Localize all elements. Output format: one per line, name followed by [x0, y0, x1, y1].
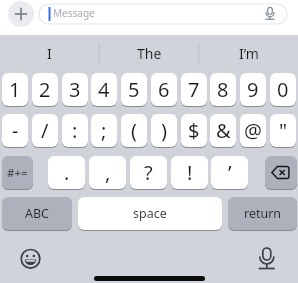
staticText: . — [64, 159, 70, 186]
button[interactable]: ( — [121, 114, 147, 148]
staticText: 4 — [98, 76, 110, 103]
staticText: ’ — [228, 159, 232, 186]
staticText: 1 — [9, 76, 21, 103]
button[interactable]: 2 — [32, 73, 58, 107]
button[interactable]: 1 — [2, 73, 28, 107]
button[interactable]: ! — [171, 156, 208, 190]
button[interactable]: - — [2, 114, 28, 148]
staticText: 5 — [128, 76, 140, 103]
staticText: space — [133, 205, 167, 222]
button[interactable]: , — [89, 156, 126, 190]
staticText: 6 — [158, 76, 170, 103]
button[interactable]: ; — [91, 114, 117, 148]
staticText: return — [244, 205, 282, 222]
button[interactable]: 0 — [270, 73, 296, 107]
staticText: / — [41, 117, 49, 144]
staticText: 0 — [277, 76, 289, 103]
staticText: : — [72, 117, 78, 144]
staticText: #+= — [7, 165, 28, 181]
staticText: 7 — [188, 76, 200, 103]
staticText: I’m — [239, 44, 259, 63]
button[interactable]: ’ — [211, 156, 248, 190]
button[interactable]: $ — [181, 114, 207, 148]
button[interactable]: 6 — [151, 73, 177, 107]
staticText: , — [105, 159, 111, 186]
button[interactable]: ? — [130, 156, 167, 190]
staticText: " — [279, 117, 288, 144]
staticText: ? — [144, 159, 153, 186]
button[interactable]: ) — [151, 114, 177, 148]
staticText: I — [47, 44, 52, 63]
button[interactable]: 3 — [62, 73, 88, 107]
staticText: ) — [161, 117, 167, 144]
button[interactable]: ABC — [2, 197, 72, 231]
button[interactable] — [252, 244, 282, 274]
staticText: $ — [188, 117, 200, 144]
button[interactable] — [265, 156, 297, 190]
button[interactable]: & — [210, 114, 236, 148]
button[interactable]: / — [32, 114, 58, 148]
button[interactable] — [16, 244, 46, 274]
button[interactable]: 7 — [181, 73, 207, 107]
staticText: The — [137, 44, 162, 63]
button[interactable]: 4 — [91, 73, 117, 107]
button[interactable]: 9 — [240, 73, 266, 107]
staticText: ( — [131, 117, 137, 144]
staticText: 3 — [69, 76, 81, 103]
staticText: ; — [101, 117, 107, 144]
button[interactable]: I — [0, 40, 99, 66]
button[interactable]: Message — [39, 4, 287, 24]
staticText: 2 — [39, 76, 51, 103]
button[interactable]: return — [228, 197, 297, 231]
staticText: Message — [53, 6, 95, 20]
button[interactable]: 8 — [210, 73, 236, 107]
button[interactable]: space — [78, 197, 222, 231]
button[interactable]: 5 — [121, 73, 147, 107]
button[interactable]: I’m — [199, 40, 298, 66]
staticText: 9 — [247, 76, 259, 103]
staticText: @ — [244, 117, 262, 144]
staticText: ABC — [25, 205, 50, 222]
staticText: & — [216, 117, 231, 144]
button[interactable]: @ — [240, 114, 266, 148]
button[interactable]: " — [270, 114, 296, 148]
button[interactable]: The — [99, 40, 199, 66]
staticText: 8 — [217, 76, 229, 103]
button[interactable] — [8, 1, 34, 27]
staticText: - — [12, 117, 19, 144]
button[interactable]: . — [48, 156, 85, 190]
button[interactable]: #+= — [2, 156, 33, 190]
button[interactable]: : — [62, 114, 88, 148]
staticText: ! — [187, 159, 193, 186]
